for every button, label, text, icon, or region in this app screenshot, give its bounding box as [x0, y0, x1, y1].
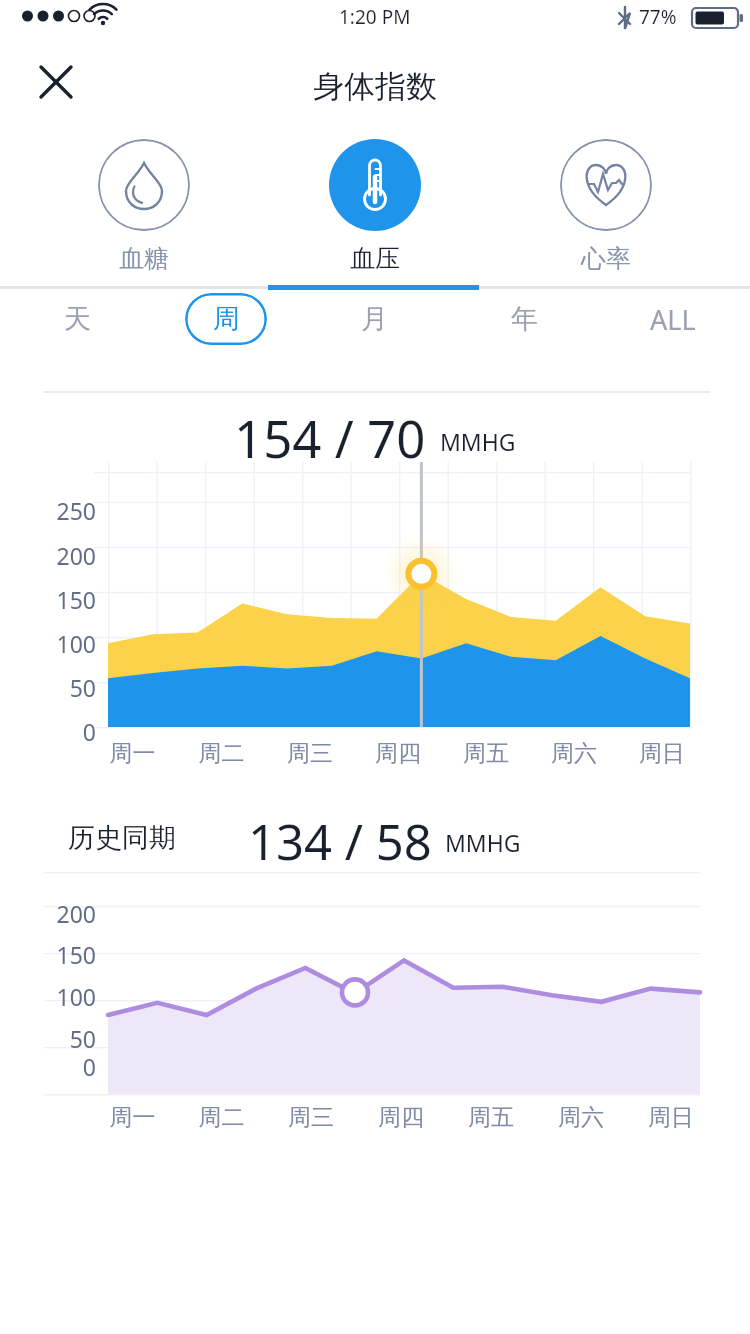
staticText: 150 — [0, 584, 96, 615]
staticText: 天 — [64, 302, 91, 336]
staticText: 周六 — [536, 1103, 626, 1132]
staticText: 历史同期 — [68, 821, 176, 855]
staticText: 年 — [511, 302, 538, 336]
staticText: 100 — [0, 981, 96, 1012]
staticText: 心率 — [581, 243, 631, 274]
staticText: 100 — [0, 628, 96, 659]
staticText: MMHG — [440, 426, 516, 457]
staticText: 0 — [0, 1051, 96, 1082]
staticText: 血压 — [350, 243, 400, 274]
staticText: 250 — [0, 495, 96, 526]
staticText: 周 — [213, 302, 240, 336]
staticText: 周日 — [626, 1103, 716, 1132]
staticText: 周日 — [618, 739, 706, 768]
staticText: 周二 — [177, 1103, 266, 1132]
staticText: 77% — [639, 4, 677, 30]
staticText: 150 — [0, 939, 96, 970]
button[interactable]: 血糖 — [92, 128, 196, 274]
button[interactable]: 天 — [34, 293, 120, 345]
staticText: 周五 — [442, 739, 530, 768]
staticText: 周一 — [88, 1103, 177, 1132]
staticText: 周四 — [354, 739, 442, 768]
staticText: 身体指数 — [313, 67, 437, 106]
staticText: 200 — [0, 898, 96, 929]
staticText: 0 — [0, 716, 96, 747]
staticText: 月 — [361, 302, 388, 336]
staticText: ALL — [650, 301, 696, 338]
button[interactable]: 血压 — [323, 128, 427, 274]
button[interactable]: 心率 — [554, 128, 658, 274]
staticText: 周二 — [177, 739, 266, 768]
button[interactable]: 周 — [184, 293, 268, 345]
staticText: 血糖 — [119, 243, 169, 274]
staticText: 周三 — [266, 739, 354, 768]
staticText: 200 — [0, 540, 96, 571]
staticText: 50 — [0, 1023, 96, 1054]
staticText: 周一 — [88, 739, 177, 768]
button[interactable]: 年 — [481, 293, 567, 345]
button[interactable]: ALL — [630, 293, 716, 345]
staticText: 周五 — [446, 1103, 536, 1132]
staticText: 周三 — [266, 1103, 356, 1132]
button[interactable]: 月 — [331, 293, 417, 345]
button[interactable]: Close — [22, 48, 90, 116]
staticText: MMHG — [445, 827, 521, 858]
staticText: 134 / 58 — [248, 808, 432, 868]
staticText: 154 / 70 — [234, 403, 426, 467]
staticText: 1:20 PM — [339, 4, 411, 30]
staticText: 50 — [0, 672, 96, 703]
staticText: 周六 — [530, 739, 618, 768]
staticText: 周四 — [356, 1103, 446, 1132]
